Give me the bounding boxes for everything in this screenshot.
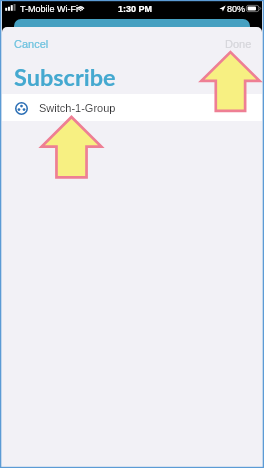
- button[interactable]: Done: [222, 35, 255, 53]
- staticText: Cancel: [14, 38, 49, 50]
- staticText: T-Mobile Wi-Fi: [20, 4, 78, 14]
- staticText: Done: [225, 38, 252, 50]
- staticText: 80%: [227, 4, 246, 14]
- staticText: Subscribe: [14, 63, 116, 91]
- button[interactable]: Switch-1-Group: [2, 94, 262, 121]
- staticText: 1:30 PM: [118, 4, 153, 14]
- staticText: Switch-1-Group: [39, 102, 116, 114]
- button[interactable]: Cancel: [11, 35, 52, 53]
